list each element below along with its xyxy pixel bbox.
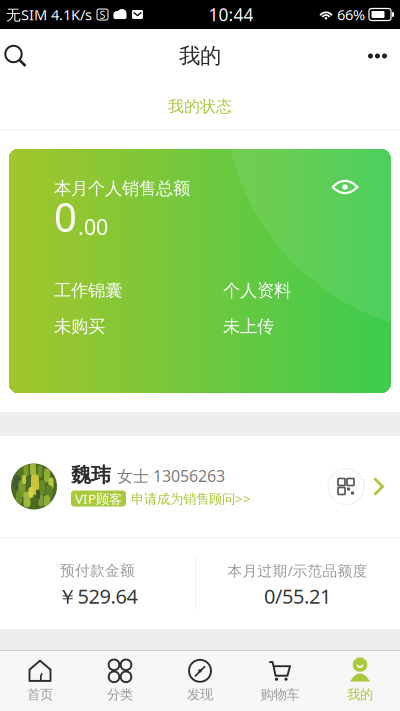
staticText: 申请成为销售顾问>>	[131, 490, 251, 507]
staticText: VIP顾客	[75, 490, 122, 507]
button[interactable]: More options	[332, 29, 400, 83]
staticText: 我的状态	[168, 97, 232, 116]
button[interactable]: 发现	[160, 651, 240, 711]
button[interactable]: 我的状态	[0, 83, 400, 130]
button[interactable]: 魏玮	[0, 436, 400, 537]
staticText: 0	[54, 190, 77, 243]
staticText: 首页	[27, 686, 53, 703]
staticText: 购物车	[260, 686, 299, 703]
staticText: 0/55.21	[264, 583, 331, 609]
button[interactable]: 我的	[320, 651, 400, 711]
button[interactable]: 预付款金额	[0, 538, 195, 629]
staticText: 女士 13056263	[117, 465, 225, 486]
staticText: 我的	[347, 686, 373, 703]
staticText: 未购买	[54, 316, 105, 337]
button[interactable]: 首页	[0, 651, 80, 711]
button[interactable]: 本月过期/示范品额度	[195, 538, 400, 629]
staticText: 发现	[187, 686, 213, 703]
staticText: 未上传	[223, 316, 274, 337]
staticText: 本月过期/示范品额度	[227, 561, 367, 580]
staticText: 我的	[179, 43, 221, 69]
staticText: S	[99, 7, 105, 22]
button[interactable]: Search	[0, 29, 49, 83]
staticText: 无SIM 4.1K/s	[6, 5, 92, 24]
staticText: 魏玮	[71, 463, 111, 487]
button[interactable]: Toggle amount visibility	[322, 173, 368, 201]
staticText: ￥529.64	[57, 583, 137, 609]
button[interactable]: 分类	[80, 651, 160, 711]
staticText: 66%	[337, 5, 365, 24]
button[interactable]: 购物车	[240, 651, 320, 711]
staticText: 本月个人销售总额	[54, 178, 190, 199]
staticText: .00	[78, 213, 108, 241]
staticText: 个人资料	[223, 280, 291, 301]
staticText: 工作锦囊	[54, 280, 122, 301]
staticText: 预付款金额	[60, 561, 135, 579]
staticText: 10:44	[208, 3, 253, 26]
staticText: 分类	[107, 686, 133, 703]
